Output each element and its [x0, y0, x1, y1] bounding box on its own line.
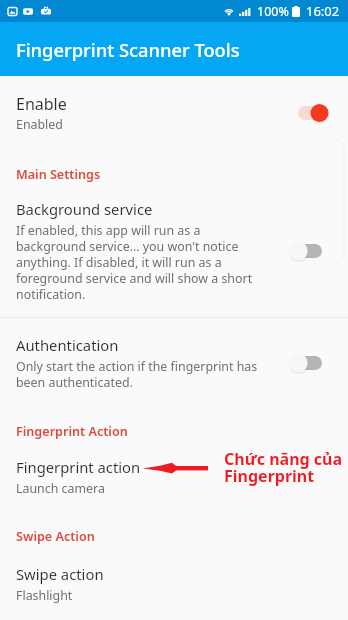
staticText: Launch camera: [16, 480, 105, 497]
staticText: 16:02: [306, 2, 340, 20]
staticText: 100%: [257, 3, 289, 20]
staticText: Chức năng của Fingerprint: [224, 448, 343, 487]
button[interactable]: Fingerprint Scanner Tools: [0, 22, 348, 76]
staticText: Only start the action if the fingerprint…: [16, 358, 258, 391]
staticText: Authentication: [16, 335, 119, 355]
staticText: Enable: [16, 93, 67, 115]
staticText: If enabled, this app will run as a backg…: [16, 222, 253, 303]
button[interactable]: Background service: [0, 196, 348, 306]
staticText: Background service: [16, 199, 153, 219]
button[interactable]: Enabled toggle: [296, 100, 336, 126]
button[interactable]: Swipe action: [0, 558, 348, 610]
staticText: Swipe action: [16, 564, 104, 584]
staticText: Fingerprint action: [16, 457, 141, 477]
button[interactable]: Enable: [0, 87, 348, 139]
staticText: Flashlight: [16, 587, 73, 604]
button[interactable]: Authentication: [0, 331, 348, 395]
staticText: Fingerprint Scanner Tools: [16, 37, 240, 62]
staticText: Fingerprint Action: [16, 423, 128, 440]
button[interactable]: Disabled toggle: [296, 350, 336, 376]
staticText: Main Settings: [16, 166, 101, 183]
staticText: Enabled: [16, 116, 63, 133]
button[interactable]: Fingerprint action: [0, 451, 348, 503]
button[interactable]: Disabled toggle: [296, 238, 336, 264]
staticText: Swipe Action: [16, 528, 95, 545]
